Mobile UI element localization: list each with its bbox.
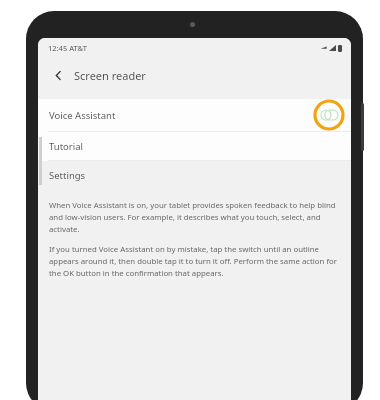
staticText: If you turned Voice Assistant on by mist… bbox=[49, 244, 341, 279]
button[interactable]: Back bbox=[48, 65, 68, 85]
button[interactable]: Tutorial bbox=[38, 132, 351, 160]
button[interactable]: Settings bbox=[38, 161, 351, 189]
staticText: Screen reader bbox=[74, 68, 146, 83]
staticText: Settings bbox=[49, 169, 86, 182]
button[interactable]: Voice Assistant bbox=[38, 99, 351, 131]
staticText: Tutorial bbox=[49, 140, 84, 153]
staticText: When Voice Assistant is on, your tablet … bbox=[49, 200, 341, 235]
staticText: Voice Assistant bbox=[49, 109, 116, 122]
button[interactable]: Voice Assistant toggle, off bbox=[313, 99, 345, 131]
staticText: 12:45 AT&T bbox=[48, 43, 87, 53]
